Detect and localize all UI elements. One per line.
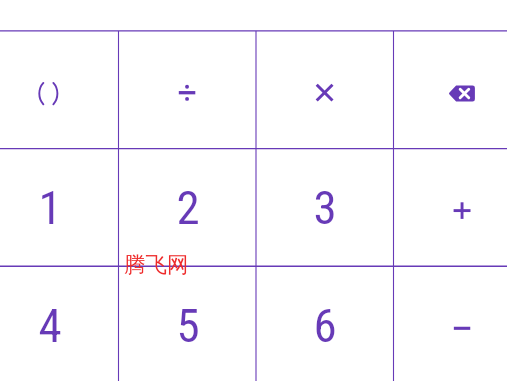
button[interactable]: Minus xyxy=(394,266,507,381)
button[interactable]: Divide xyxy=(119,31,257,149)
button[interactable]: Backspace xyxy=(394,31,507,149)
staticText: 1 xyxy=(38,180,62,235)
staticText: 3 xyxy=(313,180,337,235)
button[interactable]: 2 xyxy=(119,149,257,267)
staticText: 5 xyxy=(176,298,200,353)
staticText: 2 xyxy=(176,180,200,235)
button[interactable]: Parentheses xyxy=(0,31,119,149)
staticText: 6 xyxy=(313,298,337,353)
button[interactable]: 3 xyxy=(256,149,394,267)
button[interactable]: 1 xyxy=(0,149,119,267)
button[interactable]: Plus xyxy=(394,149,507,267)
staticText: 腾飞网 xyxy=(124,251,189,278)
button[interactable]: 5 xyxy=(119,266,257,381)
staticText: 4 xyxy=(38,298,62,353)
button[interactable]: 4 xyxy=(0,266,119,381)
button[interactable]: 6 xyxy=(256,266,394,381)
button[interactable]: Multiply xyxy=(256,31,394,149)
